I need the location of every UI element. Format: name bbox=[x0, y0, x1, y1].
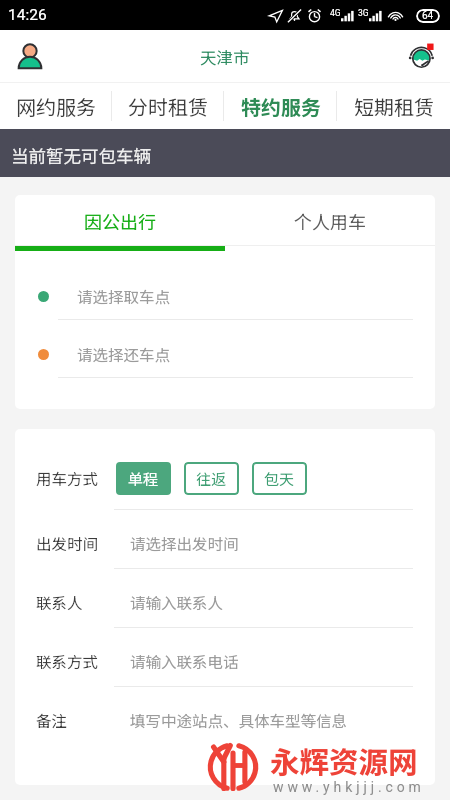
button[interactable]: 单程 bbox=[116, 462, 171, 495]
staticText: 请选择还车点 bbox=[77, 343, 171, 365]
button[interactable]: 请选择还车点 bbox=[15, 320, 435, 377]
staticText: 特约服务 bbox=[241, 92, 321, 121]
staticText: 永辉资源网 bbox=[270, 739, 418, 782]
staticText: 往返 bbox=[196, 468, 227, 490]
staticText: 短期租赁 bbox=[354, 92, 434, 121]
button[interactable]: Profile bbox=[12, 39, 48, 75]
staticText: 个人用车 bbox=[294, 208, 366, 234]
staticText: 14:26 bbox=[8, 6, 47, 24]
staticText: 联系人 bbox=[36, 591, 83, 613]
button[interactable]: 往返 bbox=[184, 462, 239, 495]
button[interactable]: 联系方式 bbox=[15, 628, 435, 686]
staticText: 4G bbox=[330, 8, 341, 18]
staticText: 当前暂无可包车辆 bbox=[11, 143, 151, 168]
staticText: 3G bbox=[358, 8, 369, 18]
staticText: www.yhkjjj.com bbox=[273, 779, 425, 795]
staticText: 备注 bbox=[36, 709, 68, 731]
staticText: 请输入联系电话 bbox=[130, 650, 239, 672]
button[interactable]: 因公出行 bbox=[15, 195, 225, 246]
staticText: 分时租赁 bbox=[128, 92, 208, 121]
button[interactable]: 包天 bbox=[252, 462, 307, 495]
staticText: 64 bbox=[422, 10, 434, 22]
button[interactable]: 个人用车 bbox=[225, 195, 435, 246]
staticText: 出发时间 bbox=[36, 532, 99, 554]
staticText: 请选择取车点 bbox=[77, 285, 171, 307]
staticText: 包天 bbox=[264, 468, 295, 490]
staticText: 请输入联系人 bbox=[130, 591, 224, 613]
button[interactable]: 联系人 bbox=[15, 569, 435, 627]
button[interactable]: Customer service bbox=[407, 41, 439, 73]
staticText: 单程 bbox=[128, 468, 159, 490]
button[interactable]: 特约服务 bbox=[224, 83, 337, 129]
button[interactable]: 短期租赁 bbox=[337, 83, 450, 129]
button[interactable]: 请选择取车点 bbox=[15, 251, 435, 319]
staticText: 填写中途站点、具体车型等信息 bbox=[130, 709, 348, 731]
staticText: 网约服务 bbox=[16, 92, 96, 121]
staticText: 因公出行 bbox=[84, 208, 156, 234]
button[interactable]: 备注 bbox=[15, 687, 435, 745]
button[interactable]: 分时租赁 bbox=[112, 83, 224, 129]
staticText: 天津市 bbox=[200, 45, 250, 69]
staticText: 联系方式 bbox=[36, 650, 99, 672]
button[interactable]: 网约服务 bbox=[0, 83, 112, 129]
staticText: 请选择出发时间 bbox=[130, 532, 239, 554]
staticText: 用车方式 bbox=[36, 467, 99, 489]
button[interactable]: 出发时间 bbox=[15, 510, 435, 568]
